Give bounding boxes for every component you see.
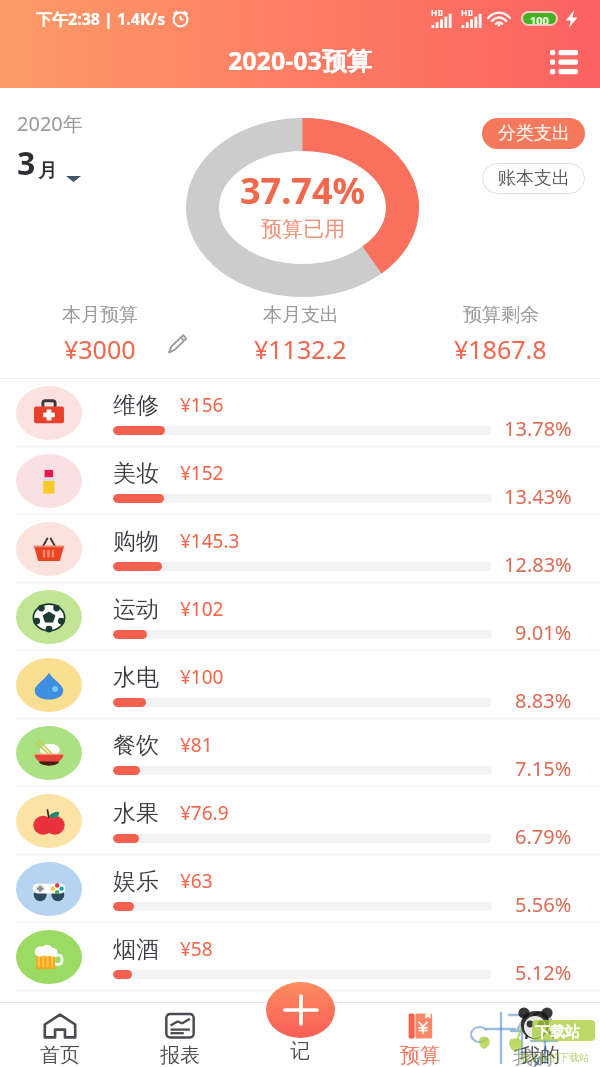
staticText: ¥152 xyxy=(180,460,224,486)
staticText: 餐饮 xyxy=(113,731,159,760)
staticText: 水电 xyxy=(113,663,159,692)
staticText: ¥145.3 xyxy=(180,528,240,554)
staticText: 账本支出 xyxy=(498,167,570,190)
button[interactable]: 购物 xyxy=(0,515,600,583)
staticText: ¥102 xyxy=(180,596,224,622)
staticText: 6.79% xyxy=(515,823,572,850)
staticText: ¥81 xyxy=(180,732,213,758)
staticText: 13.43% xyxy=(504,483,572,510)
button[interactable]: 我的 xyxy=(480,1003,600,1067)
staticText: 2020年 xyxy=(17,110,83,137)
staticText: 报表 xyxy=(160,1043,200,1067)
staticText: 运动 xyxy=(113,595,159,624)
staticText: 我的 xyxy=(520,1043,560,1067)
button[interactable]: 账本支出 xyxy=(482,163,585,194)
staticText: 烟酒 xyxy=(113,935,159,964)
staticText: 12.83% xyxy=(504,551,572,578)
button[interactable]: Menu xyxy=(542,39,586,83)
button[interactable]: 水果 xyxy=(0,787,600,855)
staticText: 7.15% xyxy=(515,755,572,782)
staticText: 5.12% xyxy=(515,959,572,986)
staticText: ¥1867.8 xyxy=(454,332,547,366)
staticText: 月 xyxy=(38,159,57,183)
staticText: 首页 xyxy=(40,1043,80,1067)
staticText: 娱乐 xyxy=(113,867,159,896)
staticText: ¥58 xyxy=(180,936,213,962)
staticText: 下午2:38 | 1.4K/s xyxy=(36,8,166,30)
staticText: 下载站 xyxy=(535,1023,580,1042)
staticText: 预算剩余 xyxy=(463,303,539,327)
button[interactable]: 娱乐 xyxy=(0,855,600,923)
button[interactable]: 运动 xyxy=(0,583,600,651)
button[interactable]: 维修 xyxy=(0,379,600,447)
button[interactable]: 首页 xyxy=(0,1003,120,1067)
button[interactable]: 水电 xyxy=(0,651,600,719)
button[interactable]: 记 xyxy=(240,1003,360,1067)
staticText: 购物 xyxy=(113,527,159,556)
staticText: 9.01% xyxy=(515,619,572,646)
staticText: 维修 xyxy=(113,391,159,420)
staticText: 最安全的下载站 xyxy=(519,1051,589,1064)
staticText: 分类支出 xyxy=(498,122,570,145)
button[interactable]: 美妆 xyxy=(0,447,600,515)
button[interactable]: 餐饮 xyxy=(0,719,600,787)
staticText: 8.83% xyxy=(515,687,572,714)
staticText: ¥63 xyxy=(180,868,213,894)
staticText: 本月预算 xyxy=(62,303,138,327)
staticText: 美妆 xyxy=(113,459,159,488)
staticText: ¥1132.2 xyxy=(254,332,347,366)
staticText: ¥156 xyxy=(180,392,224,418)
staticText: 我的 xyxy=(513,1045,553,1067)
staticText: 37.74% xyxy=(240,166,365,215)
button[interactable]: Add record xyxy=(266,982,335,1038)
staticText: ¥3000 xyxy=(64,332,136,366)
staticText: 本月支出 xyxy=(263,303,339,327)
button[interactable]: 烟酒 xyxy=(0,923,600,991)
staticText: ¥100 xyxy=(180,664,224,690)
staticText: 预算 xyxy=(400,1043,440,1067)
staticText: 5.56% xyxy=(515,891,572,918)
staticText: 2020-03预算 xyxy=(228,43,372,77)
staticText: 13.78% xyxy=(504,415,572,442)
button[interactable]: 报表 xyxy=(120,1003,240,1067)
staticText: ¥76.9 xyxy=(180,800,229,826)
staticText: 记 xyxy=(290,1039,310,1064)
staticText: 100 xyxy=(530,13,549,24)
staticText: 预算已用 xyxy=(261,216,345,242)
button[interactable]: 预算 xyxy=(360,1003,480,1067)
staticText: 水果 xyxy=(113,799,159,828)
staticText: 3 xyxy=(17,141,36,185)
button[interactable]: Edit budget xyxy=(162,329,192,359)
button[interactable]: 分类支出 xyxy=(482,118,585,149)
